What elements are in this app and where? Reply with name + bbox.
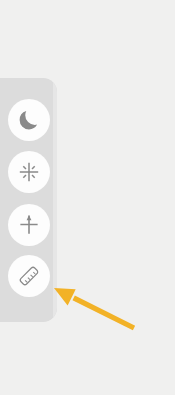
button[interactable]: Night mode: [8, 99, 50, 141]
button[interactable]: Measure: [8, 255, 50, 297]
button[interactable]: Center focus: [8, 151, 50, 193]
button[interactable]: Elevation: [8, 204, 50, 246]
